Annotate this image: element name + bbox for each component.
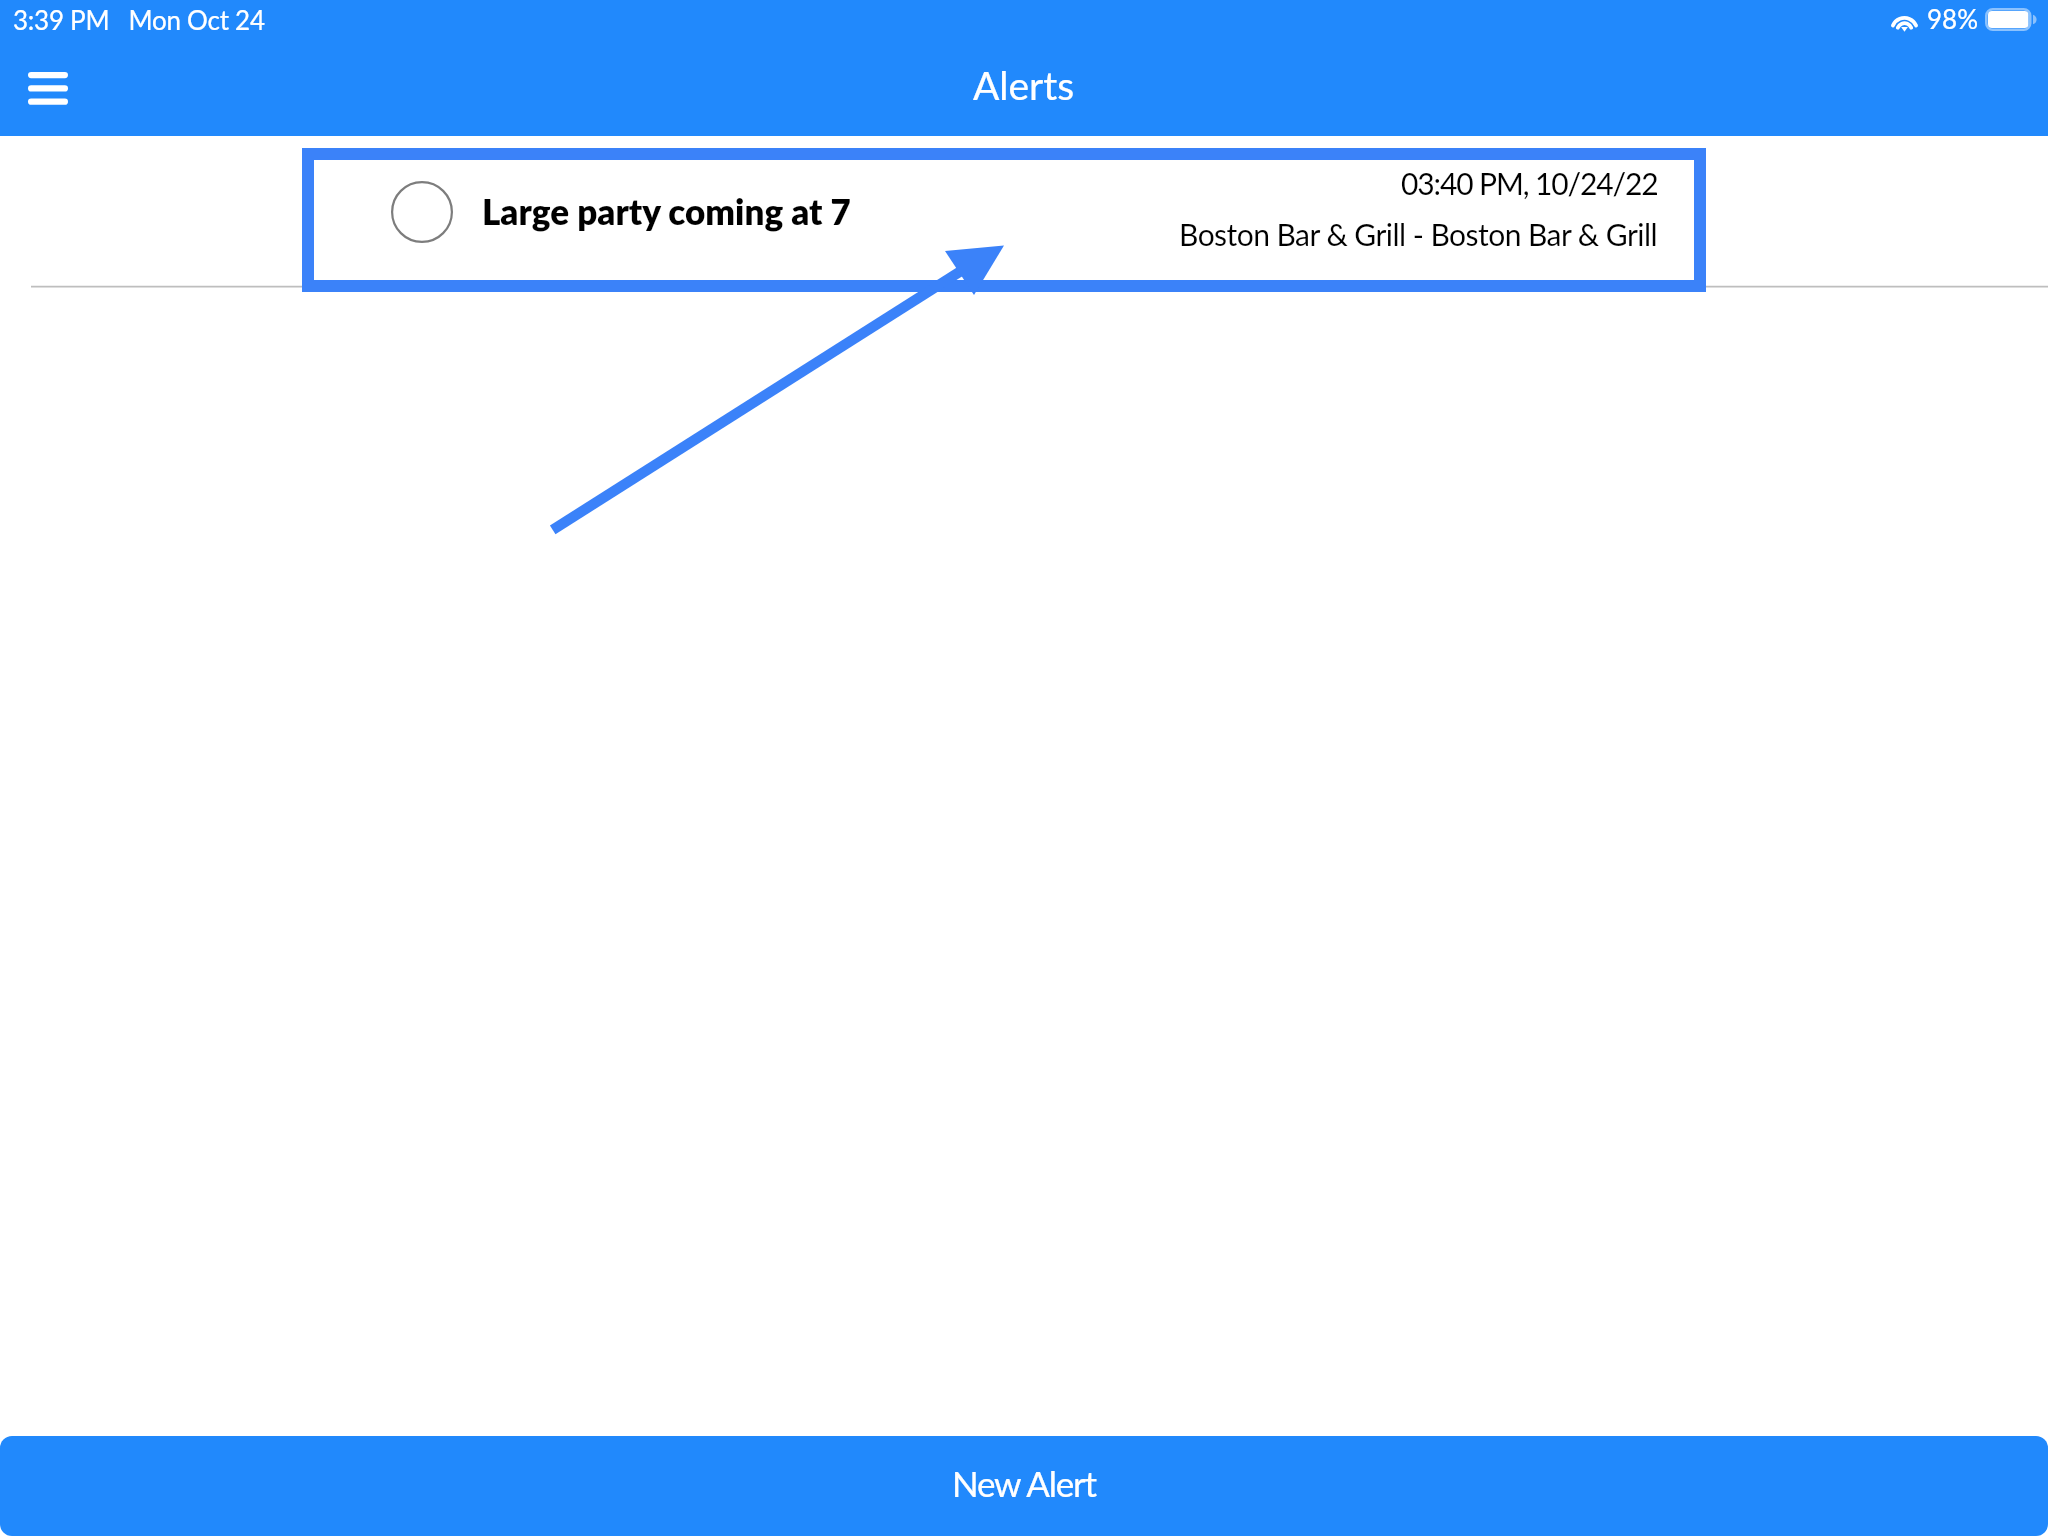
button[interactable]: New Alert xyxy=(0,1436,2048,1536)
button[interactable]: Large party coming at 7 xyxy=(0,148,2048,287)
staticText: Large party coming at 7 xyxy=(482,190,851,232)
button[interactable]: Menu xyxy=(0,50,96,126)
staticText: 3:39 PM Mon Oct 24 xyxy=(13,4,265,35)
staticText: Alerts xyxy=(973,62,1075,109)
staticText: 03:40 PM, 10/24/22 xyxy=(1401,165,1658,201)
staticText: 98% xyxy=(1927,3,1978,34)
staticText: New Alert xyxy=(952,1462,1096,1504)
staticText: Boston Bar & Grill - Boston Bar & Grill xyxy=(1179,216,1658,252)
